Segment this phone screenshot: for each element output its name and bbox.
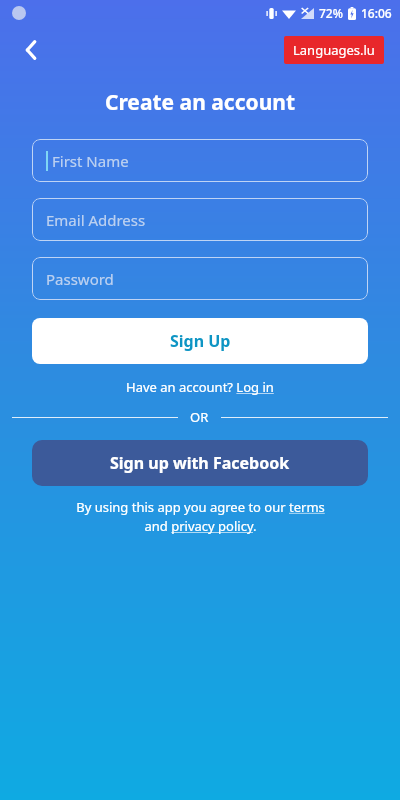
staticText: Have an account? Log in xyxy=(126,378,274,396)
staticText: Create an account xyxy=(0,88,400,117)
staticText: By using this app you agree to our terms… xyxy=(76,498,325,535)
button[interactable]: First Name xyxy=(32,139,368,182)
button[interactable]: Password xyxy=(32,257,368,300)
staticText: Password xyxy=(46,269,114,289)
staticText: 16:06 xyxy=(361,5,392,21)
staticText: 72% xyxy=(319,5,343,21)
staticText: Email Address xyxy=(46,210,146,230)
button[interactable]: Back xyxy=(14,33,48,67)
staticText: Sign Up xyxy=(170,330,231,352)
staticText: Sign up with Facebook xyxy=(110,452,290,474)
button[interactable]: Languages.lu xyxy=(284,36,384,64)
button[interactable]: Sign Up xyxy=(32,318,368,364)
staticText: Languages.lu xyxy=(293,41,375,59)
button[interactable]: Email Address xyxy=(32,198,368,241)
button[interactable]: Sign up with Facebook xyxy=(32,440,368,486)
staticText: First Name xyxy=(52,151,129,171)
staticText: OR xyxy=(190,408,209,426)
button[interactable]: Have an account? Log in xyxy=(32,378,368,396)
button[interactable]: By using this app you agree to our terms… xyxy=(32,498,368,535)
